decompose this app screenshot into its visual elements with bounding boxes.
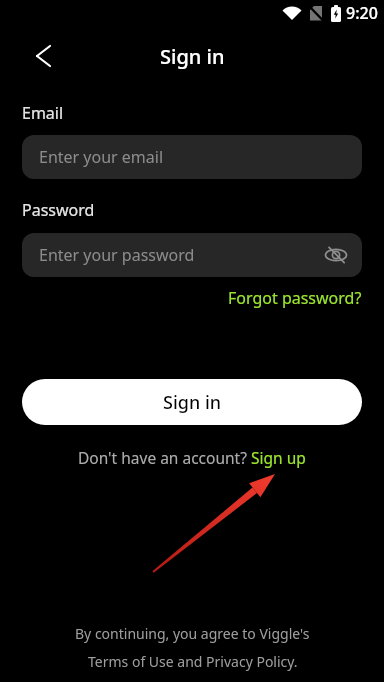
button[interactable] [324, 243, 348, 267]
staticText: Password [22, 199, 95, 221]
staticText: Enter your email [39, 146, 164, 168]
button[interactable]: Sign in [22, 379, 362, 425]
staticText: Don't have an account? [78, 447, 251, 468]
button[interactable]: Enter your email [22, 135, 362, 179]
staticText: Enter your password [39, 244, 195, 266]
staticText: Email [22, 102, 64, 124]
staticText: Sign in [160, 43, 225, 70]
button[interactable] [26, 39, 60, 73]
button[interactable]: Forgot password? [228, 287, 362, 309]
button[interactable]: Sign up [251, 447, 306, 468]
staticText: Sign in [163, 390, 222, 415]
staticText: By continuing, you agree to Viggle's [75, 624, 310, 643]
button[interactable]: Enter your password [22, 233, 362, 277]
staticText: 9:20 [346, 2, 378, 24]
button[interactable]: Terms of Use and Privacy Policy. [88, 652, 298, 671]
